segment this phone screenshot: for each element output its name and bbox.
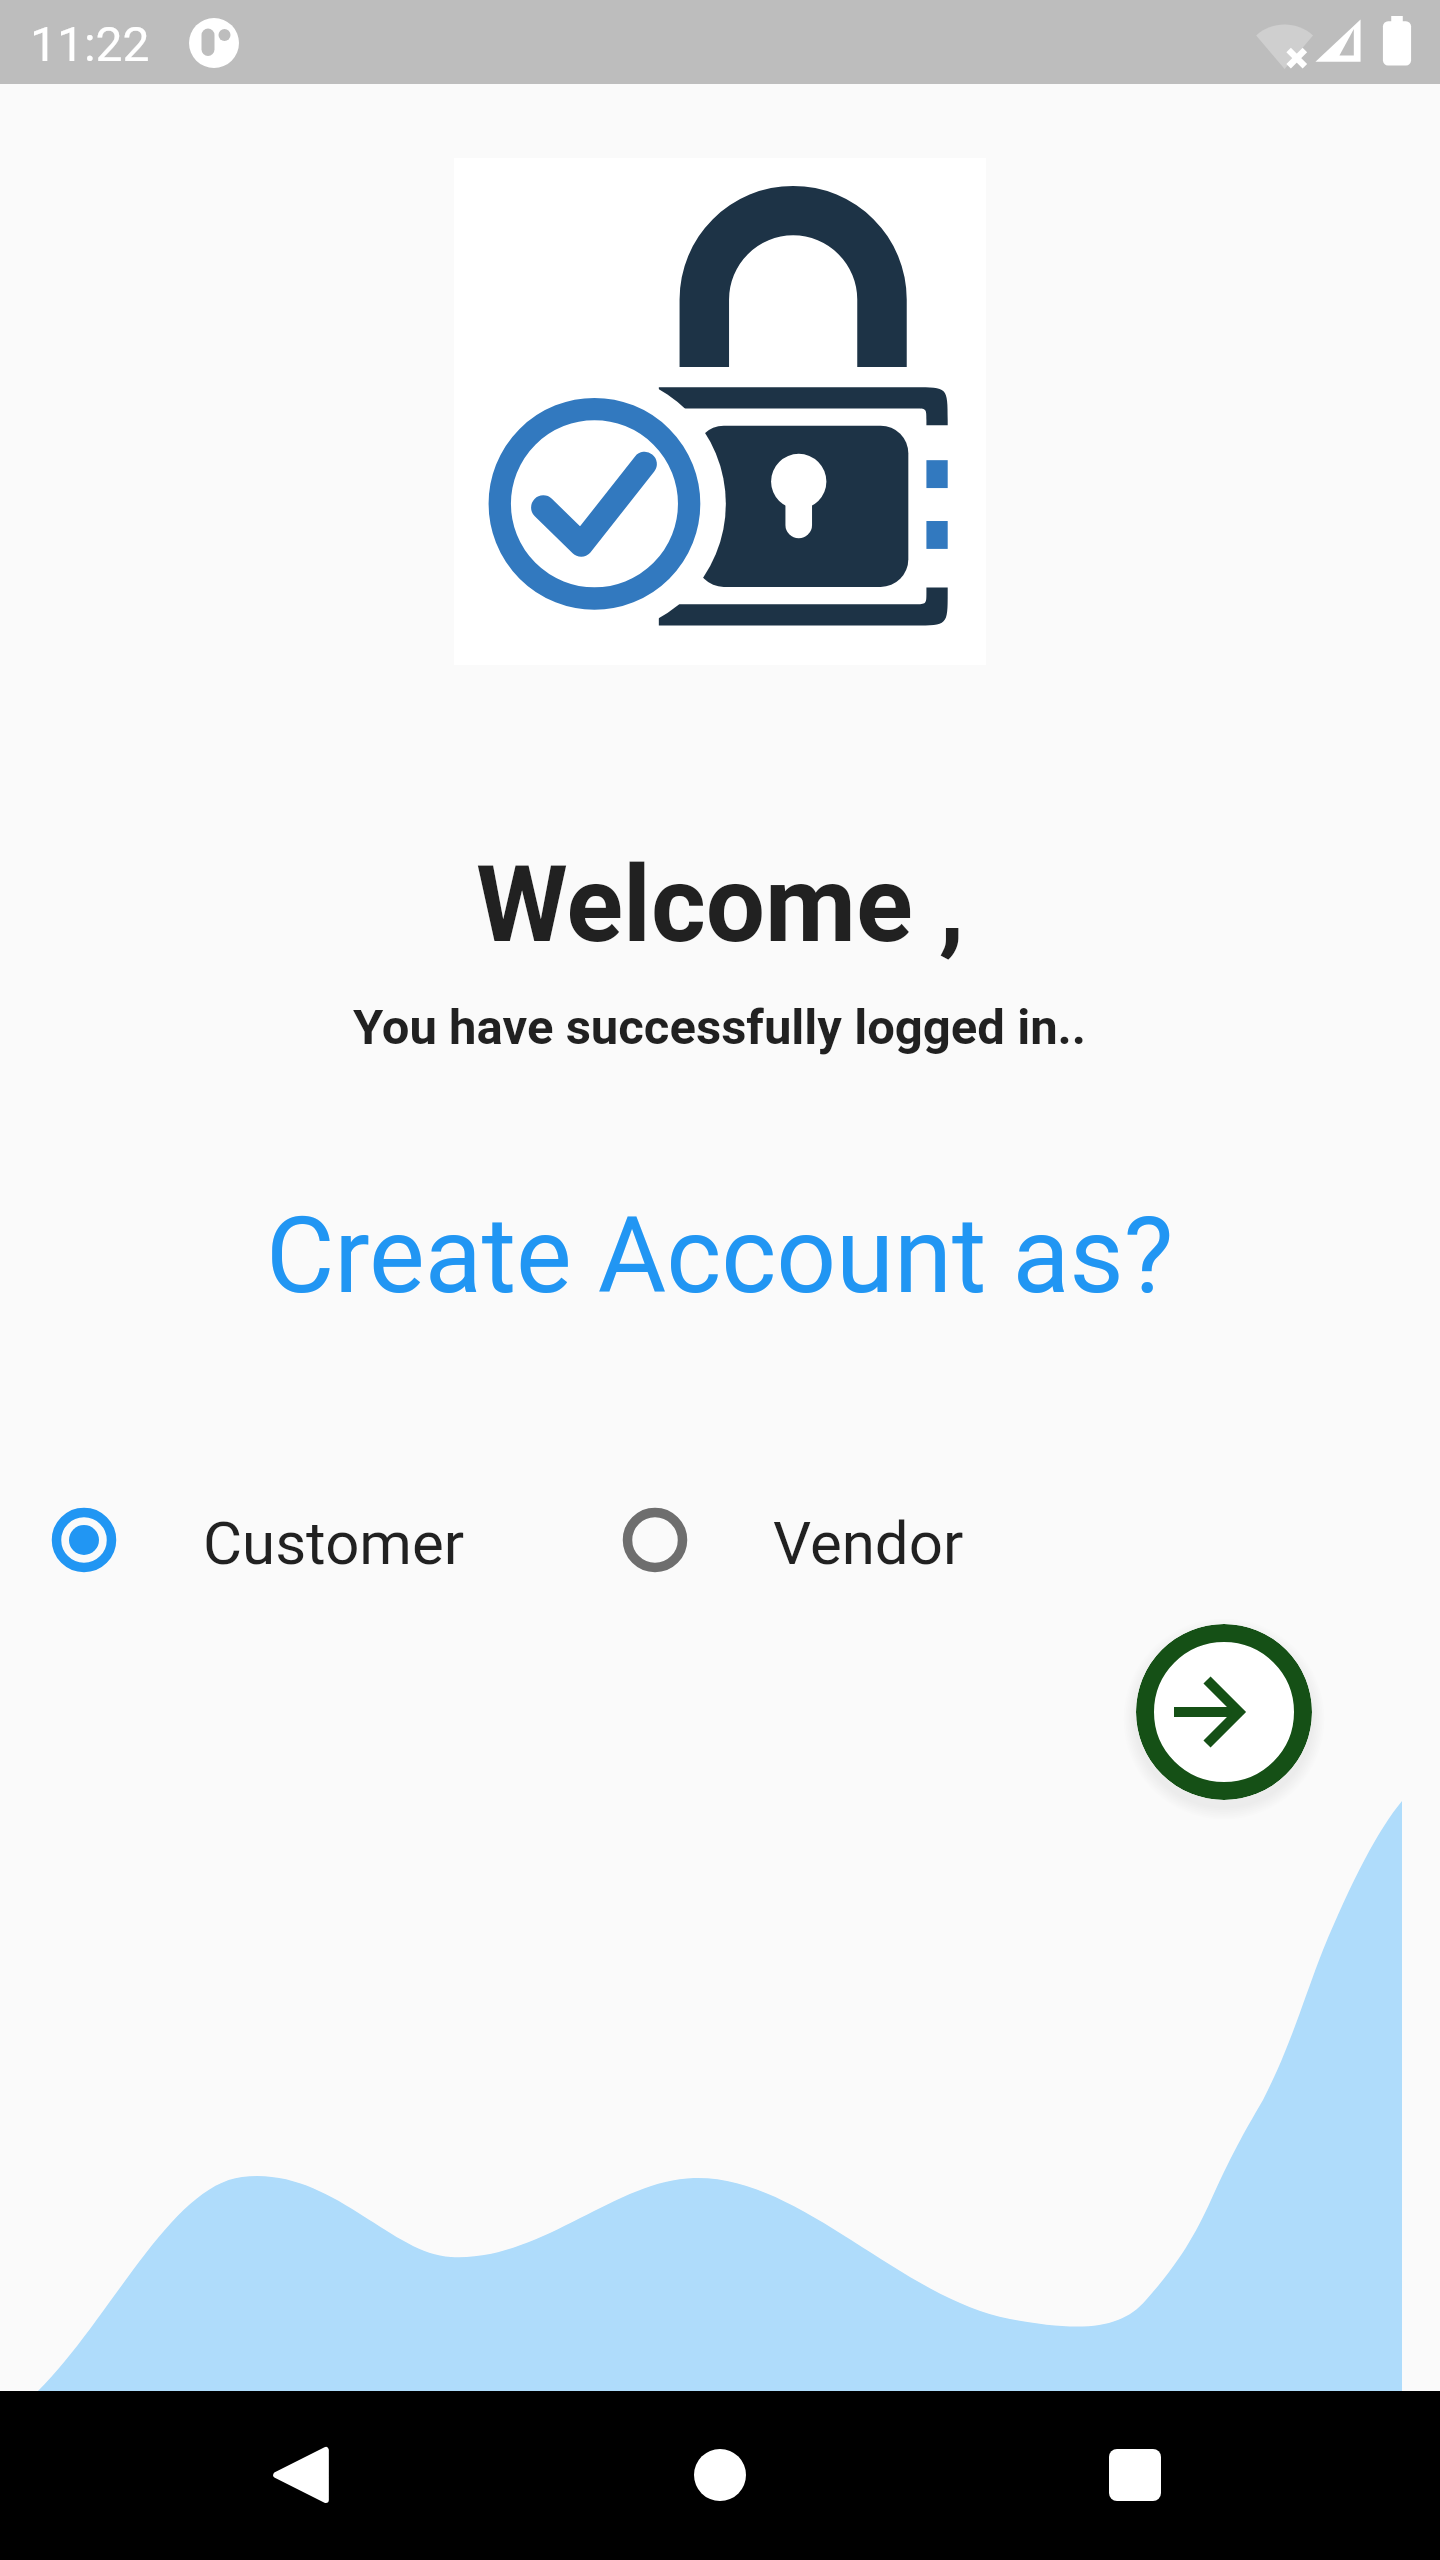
staticText: Vendor (773, 1508, 964, 1578)
button[interactable]: Home (650, 2405, 790, 2545)
staticText: Customer (203, 1508, 465, 1578)
staticText: You have successfully logged in.. (353, 999, 1087, 1056)
button[interactable]: Back (231, 2405, 371, 2545)
button[interactable]: Vendor (607, 1480, 964, 1600)
staticText: 11:22 (30, 16, 150, 72)
button[interactable]: Next (1136, 1624, 1312, 1800)
staticText: Welcome , (476, 844, 965, 967)
button[interactable]: Recents (1065, 2405, 1205, 2545)
button[interactable]: Customer (36, 1480, 465, 1600)
staticText: Create Account as? (266, 1195, 1174, 1318)
